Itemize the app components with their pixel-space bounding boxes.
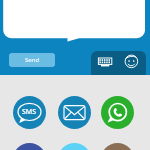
staticText: Send [25,56,40,64]
button[interactable]: Facebook [13,143,46,150]
button[interactable]: Email [58,96,91,129]
button[interactable]: Emoji [121,51,142,72]
button[interactable]: WhatsApp [101,96,134,129]
staticText: SMS [22,107,37,117]
button[interactable]: SMS [13,96,46,129]
button[interactable]: Send [9,53,55,67]
button[interactable]: App [101,143,134,150]
button[interactable]: Keyboard [95,52,115,72]
button[interactable]: Telegram [58,143,91,150]
